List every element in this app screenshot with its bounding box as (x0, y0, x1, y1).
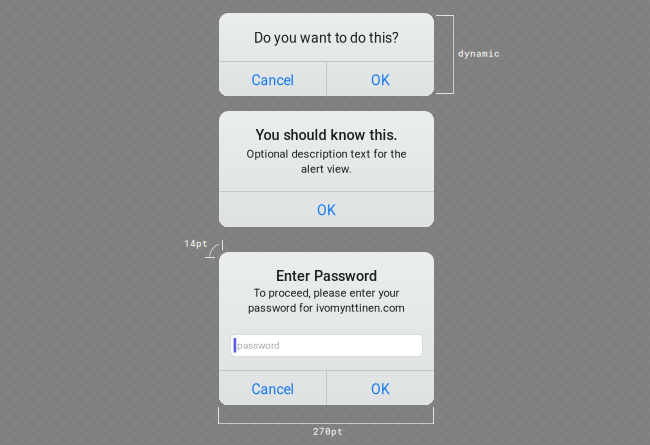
staticText: Enter Password (276, 268, 377, 284)
button[interactable]: OK (327, 370, 434, 405)
button[interactable]: Cancel (219, 370, 326, 405)
staticText: Optional description text for the (246, 147, 406, 160)
button[interactable]: Cancel (219, 61, 326, 96)
staticText: Do you want to do this? (254, 30, 399, 46)
staticText: 14pt (184, 237, 208, 249)
staticText: OK (371, 381, 390, 398)
button[interactable]: OK (219, 191, 434, 226)
staticText: Cancel (251, 381, 293, 398)
staticText: 270pt (313, 425, 343, 437)
staticText: OK (371, 72, 390, 89)
staticText: Cancel (251, 72, 293, 89)
staticText: password (237, 339, 280, 351)
button[interactable]: OK (327, 61, 434, 96)
staticText: dynamic (458, 47, 500, 59)
staticText: OK (317, 202, 336, 219)
staticText: alert view. (301, 162, 352, 175)
staticText: To proceed, please enter your (253, 286, 399, 299)
staticText: password for ivomynttinen.com (248, 301, 405, 314)
staticText: You should know this. (255, 127, 397, 143)
button[interactable]: password (230, 334, 423, 357)
